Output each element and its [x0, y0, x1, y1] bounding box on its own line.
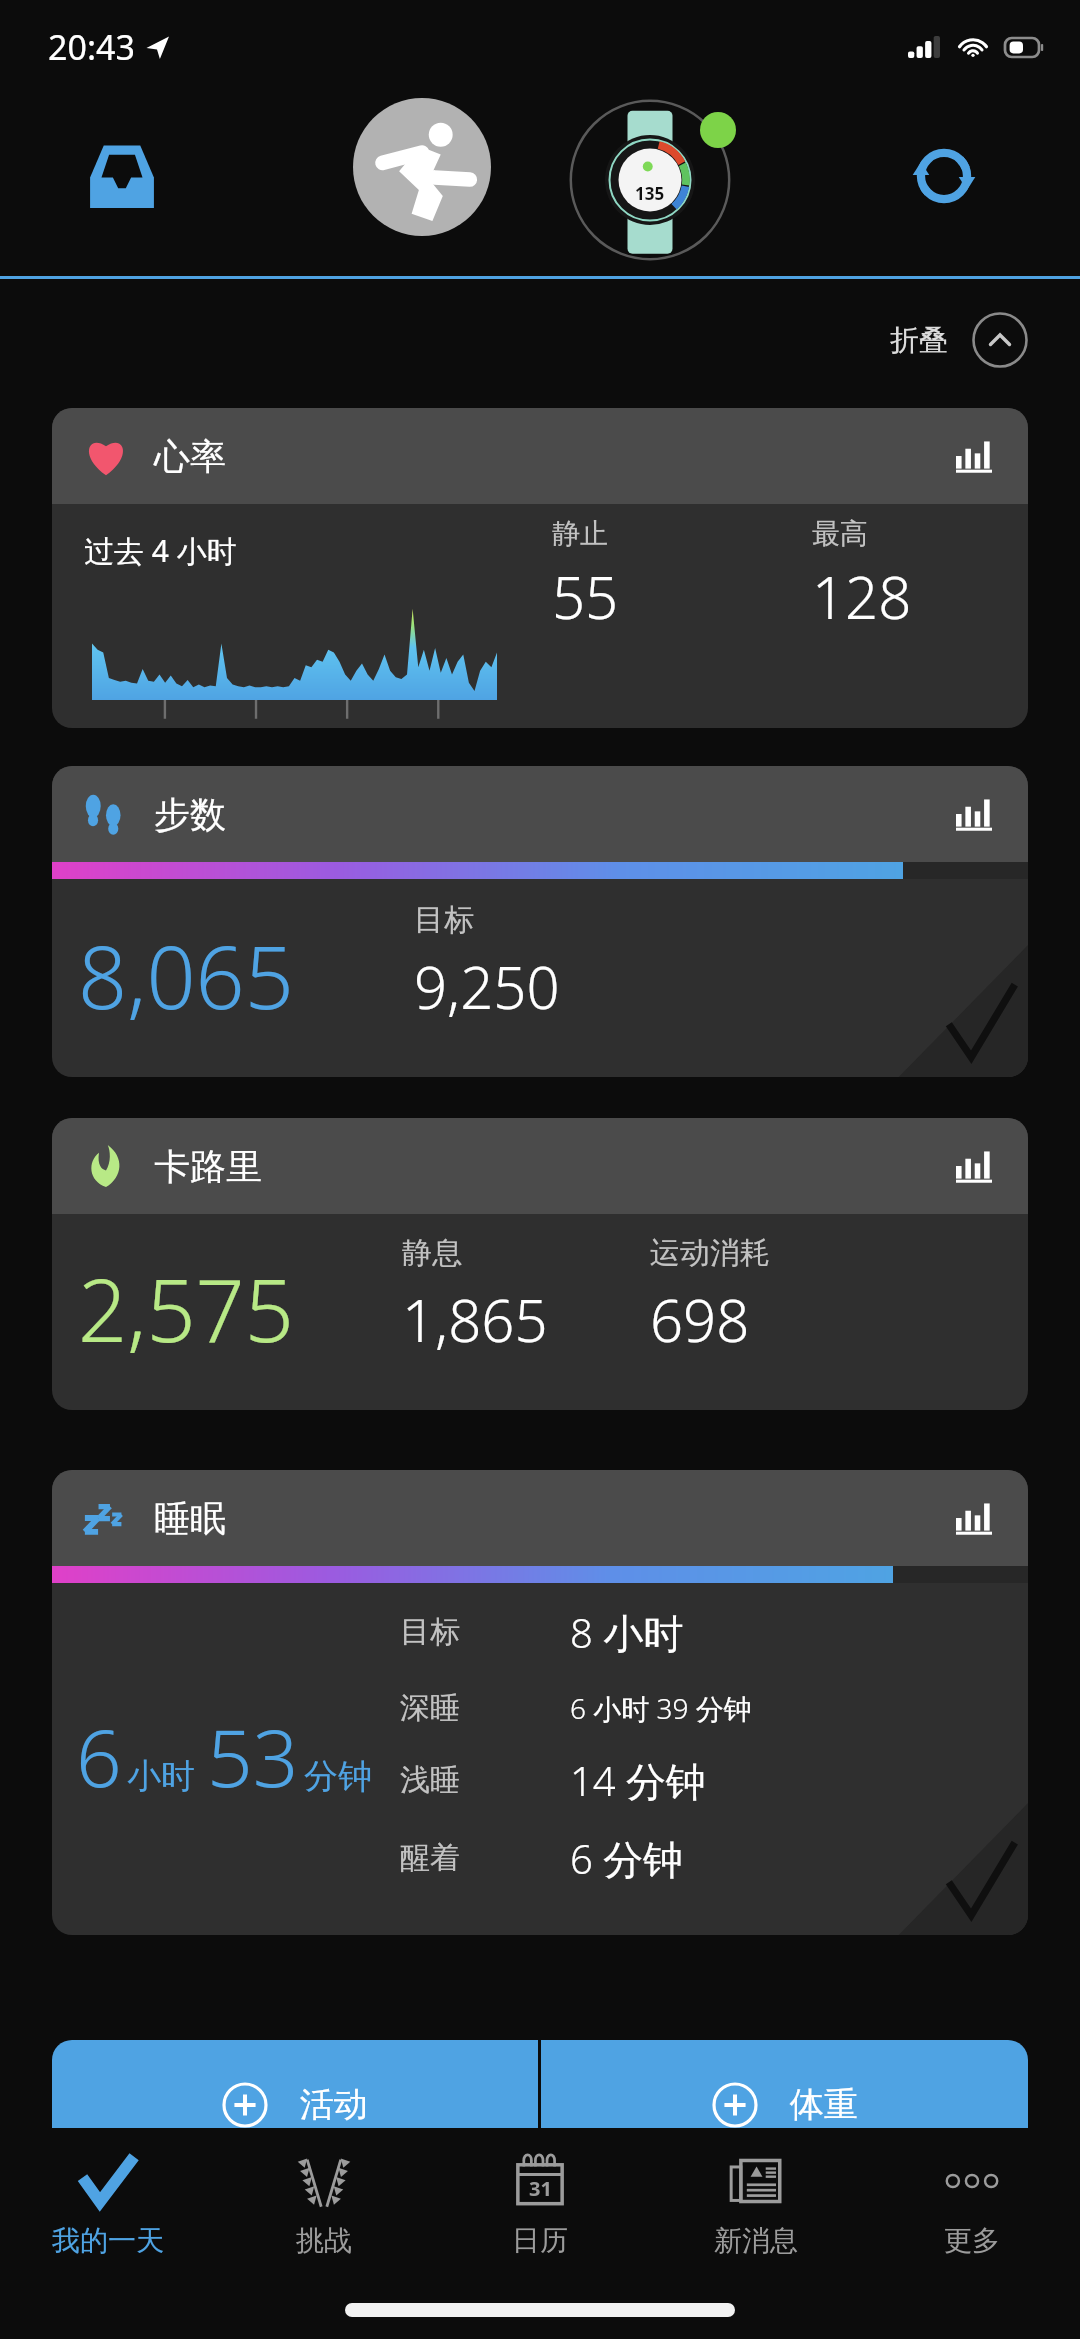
- staticText: 55: [552, 557, 619, 636]
- staticText: 体重: [772, 2080, 858, 2126]
- button[interactable]: 折叠: [882, 304, 1036, 376]
- staticText: 活动: [282, 2080, 368, 2126]
- staticText: 分钟: [304, 1755, 372, 1798]
- staticText: 目标: [414, 901, 474, 939]
- staticText: 最高: [812, 516, 868, 551]
- staticText: 浅睡: [400, 1761, 460, 1799]
- staticText: 9,250: [414, 947, 560, 1026]
- button[interactable]: Profile: [353, 98, 491, 236]
- staticText: 静息: [402, 1234, 462, 1272]
- button[interactable]: 新消息: [648, 2128, 864, 2278]
- button[interactable]: 体重: [541, 2040, 1028, 2128]
- staticText: 卡路里: [154, 1144, 262, 1189]
- staticText: 6 小时 39 分钟: [570, 1689, 752, 1727]
- staticText: 小时: [127, 1755, 195, 1798]
- staticText: 深睡: [400, 1689, 460, 1727]
- staticText: 31: [529, 2175, 552, 2202]
- staticText: 698: [650, 1280, 750, 1359]
- staticText: 135: [635, 182, 665, 205]
- staticText: 运动消耗: [650, 1234, 770, 1272]
- staticText: 128: [812, 557, 912, 636]
- button[interactable]: 睡眠: [52, 1470, 1028, 1935]
- staticText: 1,865: [402, 1280, 548, 1359]
- button[interactable]: 活动: [52, 2040, 538, 2128]
- staticText: 睡眠: [154, 1496, 226, 1541]
- button[interactable]: Chart: [946, 1138, 1002, 1194]
- staticText: 挑战: [296, 2223, 352, 2258]
- staticText: 更多: [944, 2223, 1000, 2258]
- staticText: 过去 4 小时: [84, 530, 237, 571]
- staticText: 我的一天: [52, 2223, 164, 2258]
- staticText: 6 分钟: [570, 1831, 684, 1886]
- staticText: 53: [207, 1701, 299, 1810]
- button[interactable]: Sync: [890, 122, 998, 230]
- button[interactable]: 卡路里: [52, 1118, 1028, 1410]
- staticText: 20:43: [48, 24, 135, 70]
- button[interactable]: Inbox: [74, 128, 170, 224]
- staticText: 心率: [154, 434, 226, 479]
- button[interactable]: 更多: [864, 2128, 1080, 2278]
- staticText: 2,575: [78, 1250, 294, 1367]
- button[interactable]: Chart: [946, 786, 1002, 842]
- staticText: 步数: [154, 792, 226, 837]
- staticText: 醒着: [400, 1839, 460, 1877]
- staticText: 14 分钟: [570, 1753, 707, 1808]
- staticText: 8 小时: [570, 1605, 684, 1660]
- staticText: 新消息: [714, 2223, 798, 2258]
- staticText: 日历: [512, 2223, 568, 2258]
- staticText: 8,065: [78, 917, 294, 1034]
- staticText: 目标: [400, 1613, 460, 1651]
- button[interactable]: 步数: [52, 766, 1028, 1077]
- button[interactable]: Device: [560, 90, 740, 270]
- staticText: 折叠: [890, 322, 948, 359]
- button[interactable]: Chart: [946, 428, 1002, 484]
- button[interactable]: 心率: [52, 408, 1028, 728]
- button[interactable]: 我的一天: [0, 2128, 216, 2278]
- button[interactable]: 31: [432, 2128, 648, 2278]
- staticText: 6: [76, 1701, 122, 1810]
- button[interactable]: Chart: [946, 1490, 1002, 1546]
- button[interactable]: 挑战: [216, 2128, 432, 2278]
- staticText: 静止: [552, 516, 608, 551]
